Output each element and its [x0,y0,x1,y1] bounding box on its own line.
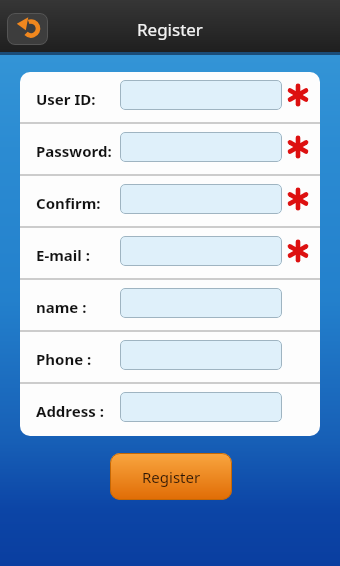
staticText: Phone : [36,349,92,369]
staticText: Confirm: [36,193,101,213]
button[interactable] [7,13,48,45]
button[interactable] [120,392,282,422]
staticText: User ID: [36,89,96,109]
button[interactable] [120,340,282,370]
staticText: name : [36,297,87,317]
staticText: Register [142,467,201,487]
staticText: E-mail : [36,245,90,265]
staticText: Password: [36,141,112,161]
staticText: Register [137,18,203,41]
button[interactable] [120,236,282,266]
button[interactable]: Register [110,453,232,500]
button[interactable] [120,184,282,214]
button[interactable] [120,132,282,162]
staticText: Address : [36,401,104,421]
button[interactable] [120,80,282,110]
button[interactable] [120,288,282,318]
